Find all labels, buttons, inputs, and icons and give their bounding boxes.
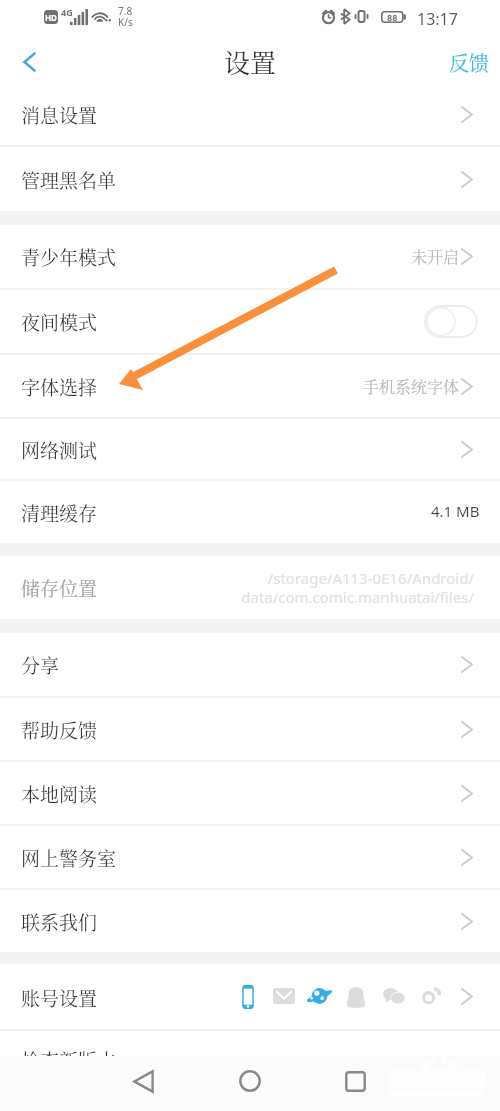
button[interactable]: 分享 xyxy=(0,633,500,696)
button[interactable]: Home xyxy=(217,1063,283,1099)
staticText: 字体选择 xyxy=(21,373,98,400)
button[interactable]: 网上警务室 xyxy=(0,826,500,888)
button[interactable]: 联系我们 xyxy=(0,890,500,952)
staticText: HD xyxy=(45,12,57,23)
button[interactable]: 消息设置 xyxy=(0,83,500,145)
button[interactable]: Weibo xyxy=(421,988,440,1004)
staticText: 分享 xyxy=(21,651,60,678)
button[interactable]: 管理黑名单 xyxy=(0,147,500,211)
staticText: 夜间模式 xyxy=(21,308,98,335)
staticText: 管理黑名单 xyxy=(21,166,117,193)
button[interactable]: 储存位置 xyxy=(0,556,500,619)
button[interactable]: Phone xyxy=(239,985,257,1009)
staticText: 青少年模式 xyxy=(21,243,117,270)
button[interactable]: 账号设置 xyxy=(0,964,500,1029)
staticText: 网上警务室 xyxy=(21,844,117,871)
button[interactable]: 夜间模式 xyxy=(0,290,500,353)
button[interactable]: 帮助反馈 xyxy=(0,698,500,760)
staticText: 88 xyxy=(387,11,398,23)
staticText: 反馈 xyxy=(449,48,489,77)
button[interactable]: 本地阅读 xyxy=(0,762,500,824)
staticText: 储存位置 xyxy=(21,574,98,601)
staticText: 帮助反馈 xyxy=(21,716,98,743)
staticText: 未开启 xyxy=(411,245,460,268)
staticText: 清理缓存 xyxy=(21,499,98,526)
staticText: 账号设置 xyxy=(21,984,98,1011)
button[interactable]: Email xyxy=(273,988,295,1004)
staticText: 检查新版本 xyxy=(21,1046,117,1071)
button[interactable]: 检查新版本 xyxy=(0,1031,500,1056)
button[interactable]: Night mode switch xyxy=(424,305,478,338)
button[interactable]: 清理缓存 xyxy=(0,481,500,543)
button[interactable]: 反馈 xyxy=(441,34,500,83)
staticText: /storage/A113-0E16/Android/ data/com.com… xyxy=(241,568,474,607)
button[interactable]: QQ Zone xyxy=(306,987,333,1005)
button[interactable]: 青少年模式 xyxy=(0,225,500,288)
button[interactable]: WeChat xyxy=(383,988,405,1004)
button[interactable]: Recent apps xyxy=(322,1063,388,1099)
staticText: 手机系统字体 xyxy=(363,375,460,398)
staticText: 设置 xyxy=(224,43,277,80)
button[interactable]: QQ xyxy=(346,987,366,1008)
staticText: 联系我们 xyxy=(21,908,98,935)
staticText: 7.8 K/s xyxy=(118,4,133,29)
staticText: 4G xyxy=(61,6,73,18)
button[interactable]: Back xyxy=(0,34,56,83)
staticText: 消息设置 xyxy=(21,101,98,128)
staticText: 网络测试 xyxy=(21,436,98,463)
button[interactable]: 字体选择 xyxy=(0,355,500,417)
button[interactable]: Back xyxy=(110,1063,176,1099)
staticText: 本地阅读 xyxy=(21,780,98,807)
staticText: 13:17 xyxy=(417,8,458,30)
button[interactable]: 网络测试 xyxy=(0,419,500,479)
staticText: 4.1 MB xyxy=(431,501,480,521)
